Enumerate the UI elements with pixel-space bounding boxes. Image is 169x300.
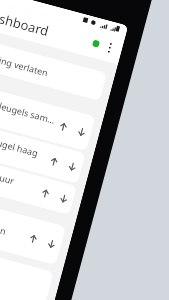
button[interactable]: Rolluik daglijnen [0,192,66,265]
button[interactable]: Down [56,191,72,206]
staticText: Zonnevleugels samen [0,91,60,127]
staticText: Woning verlaten [0,49,50,79]
button[interactable]: Connected [92,39,100,48]
staticText: Zonwand muur [0,158,16,186]
button[interactable]: Up [25,231,41,247]
button[interactable]: Zonnevleugels samen [0,82,96,151]
button[interactable]: Down [64,159,80,175]
button[interactable]: Down [74,124,90,140]
button[interactable] [0,237,54,300]
button[interactable]: Zonnevleugel haag [0,118,86,184]
button[interactable]: Up [46,154,62,170]
button[interactable]: Down [44,236,60,252]
staticText: Dashboard [0,5,51,40]
button[interactable]: Zonwand muur [0,151,77,215]
staticText: Rolluik daglijnen [0,207,8,237]
button[interactable]: Up [55,119,71,135]
button[interactable]: Up [37,186,53,202]
button[interactable]: More options [102,39,117,56]
staticText: Zonnevleugel haag [0,126,40,159]
button[interactable]: Woning verlaten [0,38,107,101]
